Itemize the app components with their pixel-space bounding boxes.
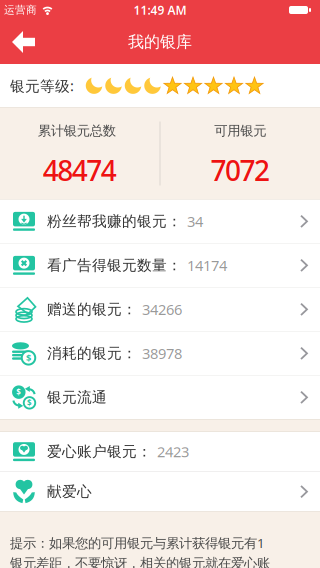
staticText: 34 [187,212,203,231]
staticText: 看广告得银元数量： [47,256,182,274]
button[interactable]: Back [0,19,35,64]
staticText: $ [26,352,31,364]
staticText: 赠送的银元： [47,300,137,318]
staticText: 爱心账户银元： [47,443,152,461]
staticText: 银元流通 [47,388,107,406]
staticText: 34266 [142,300,182,319]
button[interactable]: 爱心账户银元： [0,432,320,471]
staticText: 累计银元总数 [38,123,116,139]
button[interactable]: 献爱心 [0,472,320,511]
staticText: 运营商 [4,3,37,16]
staticText: 提示：如果您的可用银元与累计获得银元有1 [10,534,265,552]
staticText: 消耗的银元： [47,344,137,362]
button[interactable]: 赠送的银元： [0,288,320,331]
staticText: 银元差距，不要惊讶，相关的银元就在爱心账 [10,555,270,568]
staticText: $ [16,387,21,397]
staticText: 银元等级: [10,76,74,95]
staticText: 我的银库 [128,32,192,52]
button[interactable]: 看广告得银元数量： [0,244,320,287]
staticText: 2423 [157,442,189,461]
button[interactable]: $ [0,332,320,375]
staticText: $ [27,397,32,408]
staticText: 38978 [142,344,182,363]
staticText: 可用银元 [214,123,266,139]
staticText: 48474 [43,152,117,189]
staticText: 11:49 AM [133,2,186,18]
staticText: 14174 [187,256,227,275]
staticText: 献爱心 [47,483,92,501]
staticText: 粉丝帮我赚的银元： [47,212,182,230]
staticText: 7072 [210,152,270,189]
button[interactable]: $ [0,376,320,419]
button[interactable]: 粉丝帮我赚的银元： [0,200,320,243]
